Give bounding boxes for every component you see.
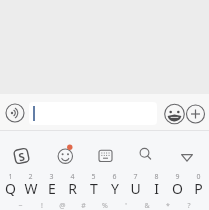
staticText: 4: [70, 172, 75, 182]
staticText: 7: [133, 172, 138, 182]
staticText: !: [41, 201, 43, 210]
button[interactable]: I: [146, 179, 167, 196]
staticText: @: [59, 201, 66, 210]
staticText: Y: [111, 179, 119, 196]
button[interactable]: U: [125, 179, 146, 196]
staticText: P: [194, 179, 203, 196]
staticText: ?: [187, 201, 191, 210]
button[interactable]: E: [41, 179, 62, 196]
button[interactable]: Q: [0, 179, 20, 196]
button[interactable]: S: [12, 147, 30, 165]
staticText: *: [166, 201, 170, 210]
button[interactable]: R: [62, 179, 83, 196]
button[interactable]: W: [20, 179, 41, 196]
staticText: ~: [18, 201, 23, 210]
button[interactable]: T: [83, 179, 104, 196]
staticText: W: [24, 179, 38, 196]
button[interactable]: [164, 104, 185, 124]
staticText: E: [48, 179, 56, 196]
staticText: T: [90, 179, 98, 196]
staticText: %: [102, 201, 108, 210]
staticText: R: [68, 179, 77, 196]
button[interactable]: P: [188, 179, 209, 196]
staticText: 5: [91, 172, 96, 182]
staticText: 3: [49, 172, 54, 182]
staticText: 8: [154, 172, 159, 182]
button[interactable]: Y: [104, 179, 125, 196]
staticText: Q: [5, 179, 16, 196]
button[interactable]: [29, 102, 157, 125]
button[interactable]: [96, 147, 115, 165]
staticText: 6: [112, 172, 117, 182]
staticText: ': [125, 201, 127, 210]
staticText: 1: [8, 172, 13, 182]
staticText: U: [130, 179, 141, 196]
button[interactable]: [136, 146, 154, 164]
button[interactable]: [178, 148, 196, 165]
staticText: 0: [196, 172, 201, 182]
button[interactable]: O: [167, 179, 188, 196]
staticText: O: [172, 179, 183, 196]
button[interactable]: [5, 103, 25, 123]
staticText: 9: [175, 172, 180, 182]
staticText: &: [144, 201, 150, 210]
staticText: #: [81, 201, 86, 210]
button[interactable]: [186, 104, 206, 124]
staticText: S: [17, 148, 27, 164]
staticText: I: [154, 179, 159, 196]
button[interactable]: [56, 147, 75, 165]
staticText: 2: [28, 172, 33, 182]
